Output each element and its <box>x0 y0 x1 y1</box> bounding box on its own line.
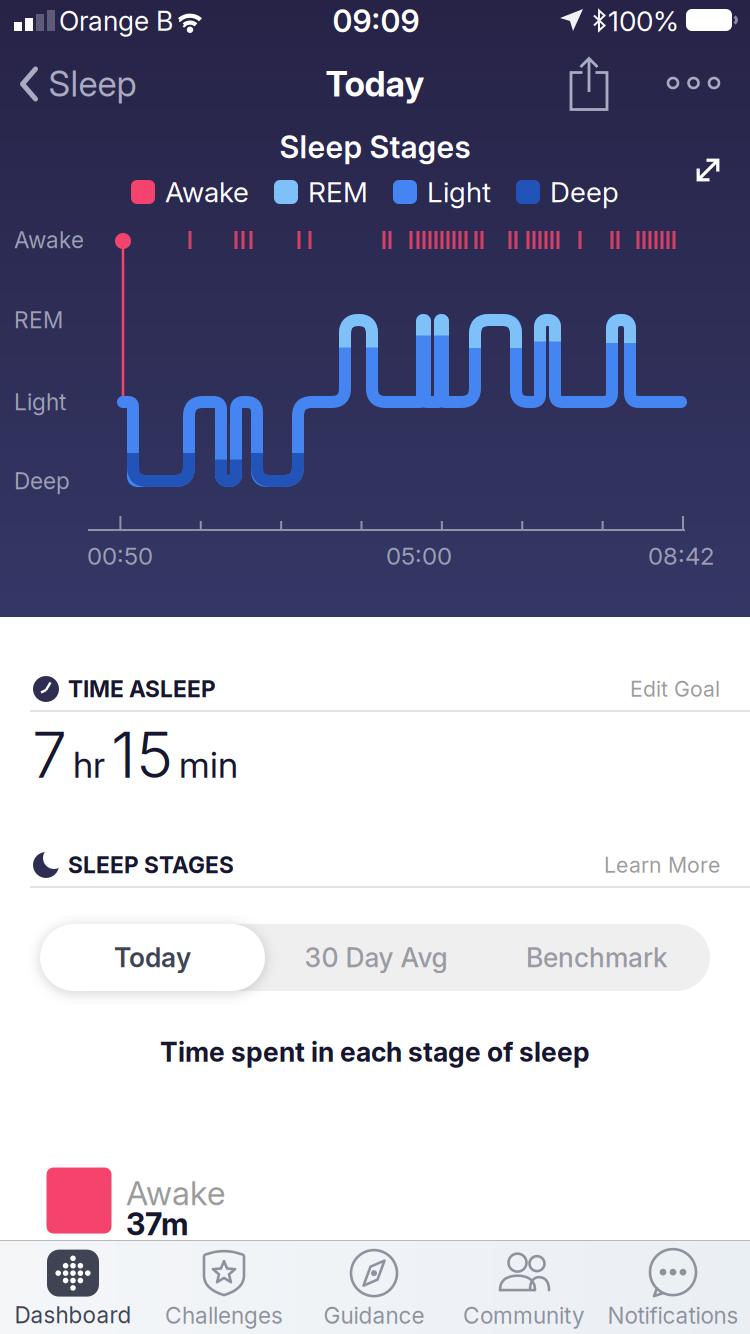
staticText: 37m <box>126 1206 189 1242</box>
staticText: Today <box>114 942 191 973</box>
button[interactable]: Dashboard <box>14 1250 131 1328</box>
staticText: Awake <box>14 227 84 253</box>
staticText: Notifications <box>607 1302 738 1329</box>
staticText: Benchmark <box>526 942 668 973</box>
staticText: Time spent in each stage of sleep <box>160 1036 590 1068</box>
button[interactable]: Edit Goal <box>0 0 750 1334</box>
staticText: Awake <box>165 175 249 208</box>
staticText: 15 <box>111 718 173 792</box>
button[interactable]: Sleep <box>19 64 136 104</box>
staticText: Today <box>325 64 424 104</box>
button[interactable]: Learn More <box>0 0 750 1334</box>
staticText: Awake <box>126 1173 225 1213</box>
staticText: Community <box>463 1302 585 1329</box>
staticText: Sleep <box>48 64 136 104</box>
button[interactable]: Challenges <box>165 1249 283 1329</box>
button[interactable]: Notifications <box>607 1249 738 1329</box>
staticText: 09:09 <box>332 3 419 39</box>
button[interactable]: Benchmark <box>487 924 707 991</box>
staticText: SLEEP STAGES <box>68 852 234 878</box>
staticText: Guidance <box>323 1302 424 1329</box>
staticText: 05:00 <box>386 542 452 570</box>
staticText: 100% <box>608 4 679 37</box>
button[interactable]: Community <box>463 1249 585 1329</box>
button[interactable]: More <box>667 77 720 89</box>
staticText: hr <box>73 743 105 786</box>
staticText: Learn More <box>604 852 720 878</box>
staticText: REM <box>308 175 368 208</box>
staticText: min <box>179 743 238 786</box>
staticText: Light <box>427 175 491 208</box>
staticText: Sleep Stages <box>279 129 470 165</box>
button[interactable]: Share <box>569 56 608 112</box>
button[interactable]: Expand chart <box>693 159 722 180</box>
staticText: Light <box>14 389 66 415</box>
staticText: TIME ASLEEP <box>68 676 216 702</box>
button[interactable]: Today <box>40 924 265 991</box>
staticText: 30 Day Avg <box>304 942 447 973</box>
staticText: Dashboard <box>14 1302 131 1328</box>
button[interactable]: 30 Day Avg <box>266 924 486 991</box>
staticText: 7 <box>32 718 67 792</box>
staticText: 08:42 <box>648 542 714 570</box>
button[interactable]: Guidance <box>323 1249 424 1329</box>
staticText: Edit Goal <box>630 676 720 702</box>
staticText: 00:50 <box>87 542 153 570</box>
staticText: Orange B <box>59 5 173 37</box>
staticText: Deep <box>550 175 619 208</box>
staticText: Challenges <box>165 1302 283 1329</box>
staticText: Deep <box>14 468 70 494</box>
staticText: REM <box>14 307 63 333</box>
